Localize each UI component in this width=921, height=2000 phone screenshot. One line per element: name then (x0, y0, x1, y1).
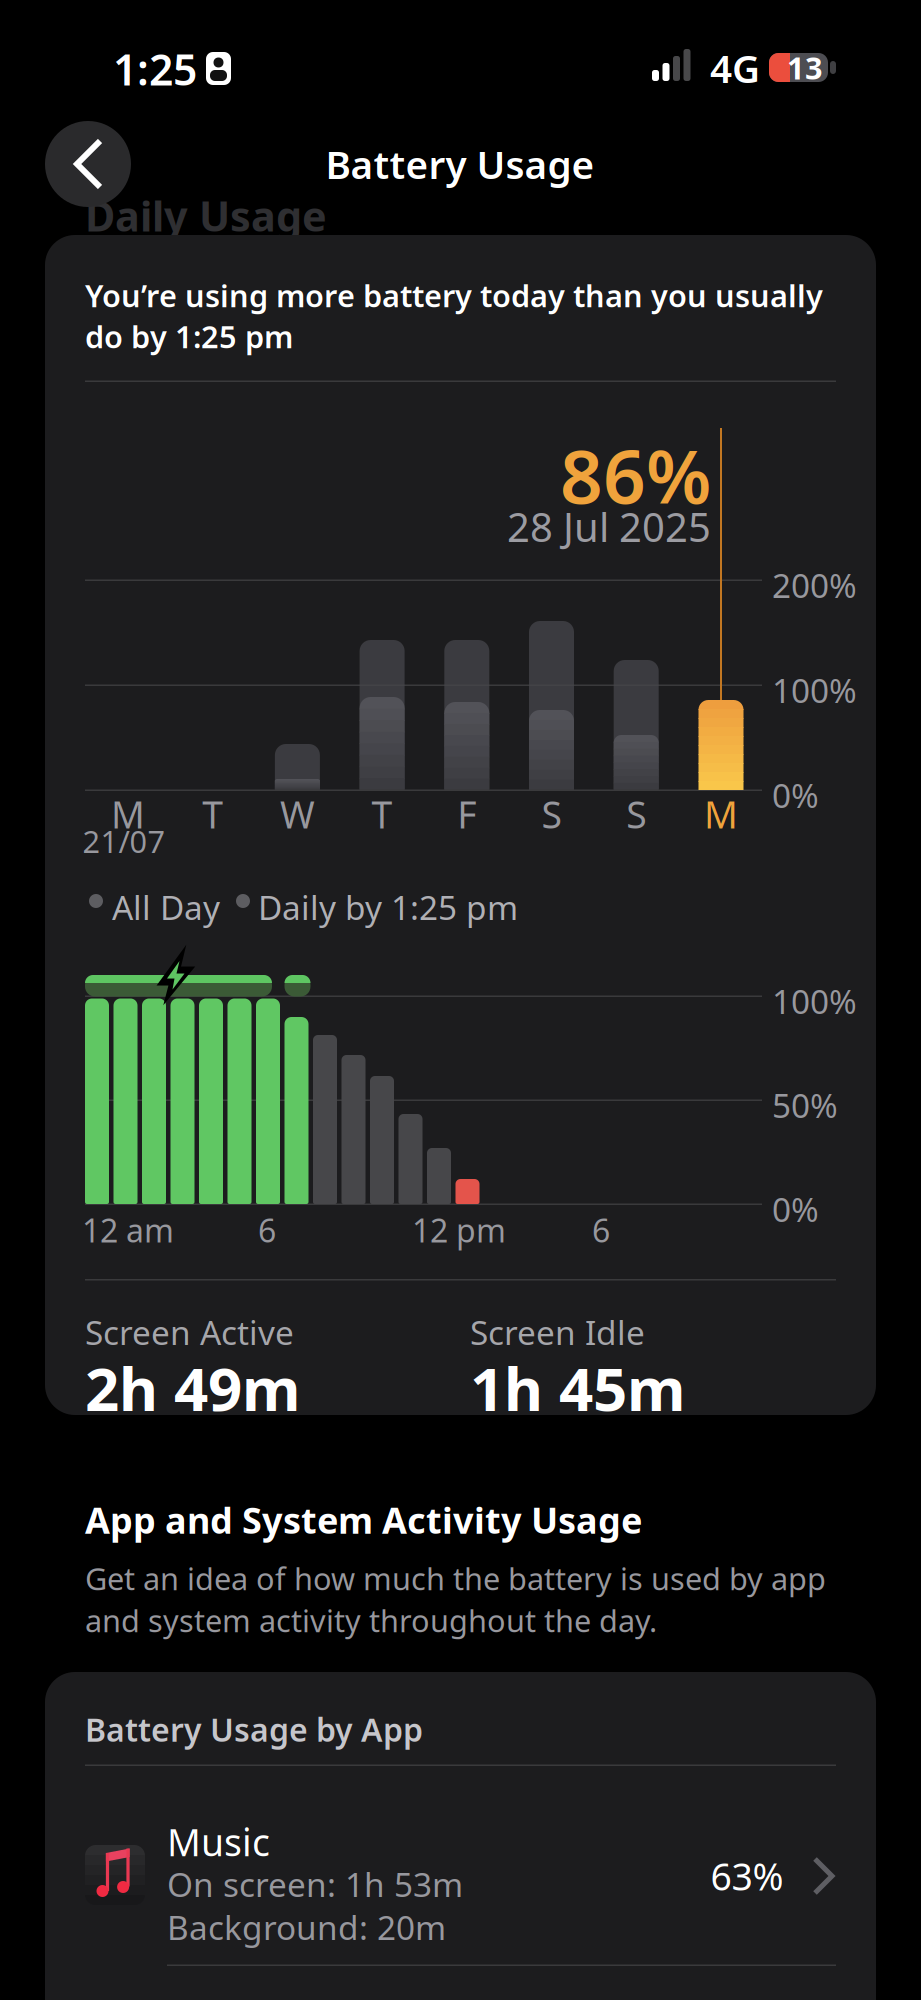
staticText: 63% (710, 1851, 783, 1901)
staticText: Screen Active (85, 1310, 294, 1354)
staticText: Battery Usage (325, 138, 594, 190)
button[interactable]: Music (45, 1805, 876, 1950)
staticText: 1:25 (113, 41, 197, 97)
staticText: Screen Idle (470, 1310, 645, 1354)
staticText: 50% (772, 1083, 838, 1127)
staticText: S (626, 789, 646, 839)
staticText: 21/07 (82, 821, 165, 861)
button[interactable] (45, 121, 131, 207)
staticText: 2h 49m (85, 1348, 301, 1428)
staticText: 100% (772, 668, 857, 712)
staticText: Music (167, 1817, 270, 1867)
staticText: Background: 20m (167, 1905, 446, 1949)
staticText: T (372, 789, 393, 839)
staticText: 86% (560, 425, 711, 524)
staticText: W (280, 789, 315, 839)
staticText: 0% (772, 773, 819, 817)
staticText: Daily by 1:25 pm (258, 885, 518, 929)
staticText: 200% (772, 563, 857, 607)
staticText: 6 (258, 1209, 276, 1251)
staticText: and system activity throughout the day. (85, 1600, 657, 1641)
staticText: 12 am (82, 1209, 174, 1251)
staticText: 12 pm (412, 1209, 506, 1251)
staticText: 1h 45m (470, 1348, 686, 1428)
staticText: S (541, 789, 561, 839)
staticText: App and System Activity Usage (85, 1496, 642, 1544)
staticText: M (111, 789, 145, 839)
staticText: 0% (772, 1187, 819, 1231)
staticText: Daily Usage (85, 188, 327, 243)
staticText: T (202, 789, 223, 839)
staticText: 6 (592, 1209, 610, 1251)
staticText: M (704, 789, 738, 839)
staticText: 13 (787, 47, 823, 88)
staticText: Get an idea of how much the battery is u… (85, 1558, 826, 1599)
staticText: F (457, 789, 476, 839)
staticText: On screen: 1h 53m (167, 1862, 463, 1906)
staticText: You’re using more battery today than you… (85, 275, 823, 316)
staticText: 28 Jul 2025 (507, 500, 711, 553)
staticText: 4G (710, 42, 760, 94)
staticText: 100% (772, 979, 857, 1023)
staticText: All Day (112, 885, 220, 929)
staticText: Battery Usage by App (85, 1708, 423, 1750)
staticText: do by 1:25 pm (85, 316, 293, 357)
